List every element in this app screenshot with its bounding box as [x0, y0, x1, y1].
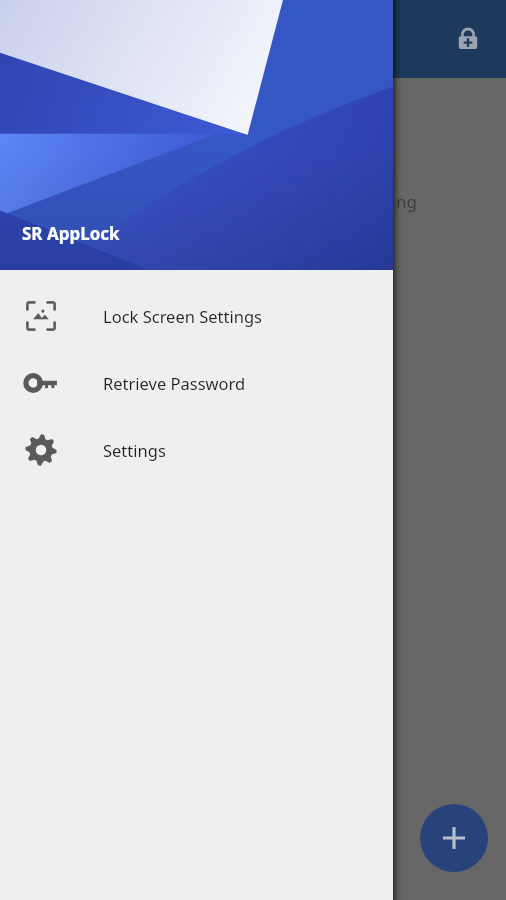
- button[interactable]: Settings: [0, 416, 393, 483]
- staticText: ng: [396, 190, 417, 213]
- button[interactable]: Add: [420, 804, 488, 872]
- staticText: Retrieve Password: [103, 372, 246, 394]
- staticText: Lock Screen Settings: [103, 305, 262, 327]
- button[interactable]: Lock Screen Settings: [0, 282, 393, 349]
- button[interactable]: Add lock: [444, 15, 492, 63]
- staticText: Settings: [103, 439, 166, 461]
- staticText: SR AppLock: [22, 222, 120, 245]
- button[interactable]: Retrieve Password: [0, 349, 393, 416]
